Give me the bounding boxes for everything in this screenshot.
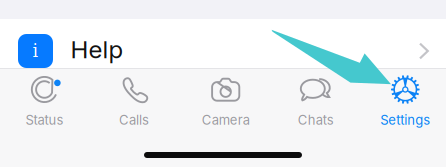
button[interactable]: Calls xyxy=(89,69,179,167)
button[interactable]: Settings xyxy=(361,69,446,167)
button[interactable]: Camera xyxy=(181,69,270,167)
button[interactable]: i xyxy=(0,19,446,68)
staticText: Chats xyxy=(298,112,334,128)
staticText: Help xyxy=(70,35,123,64)
staticText: Calls xyxy=(119,112,149,128)
button[interactable]: Chats xyxy=(271,69,360,167)
staticText: Camera xyxy=(202,112,250,128)
staticText: Status xyxy=(25,112,63,128)
staticText: i xyxy=(32,41,38,61)
button[interactable]: Status xyxy=(0,69,89,167)
staticText: Settings xyxy=(380,112,430,128)
